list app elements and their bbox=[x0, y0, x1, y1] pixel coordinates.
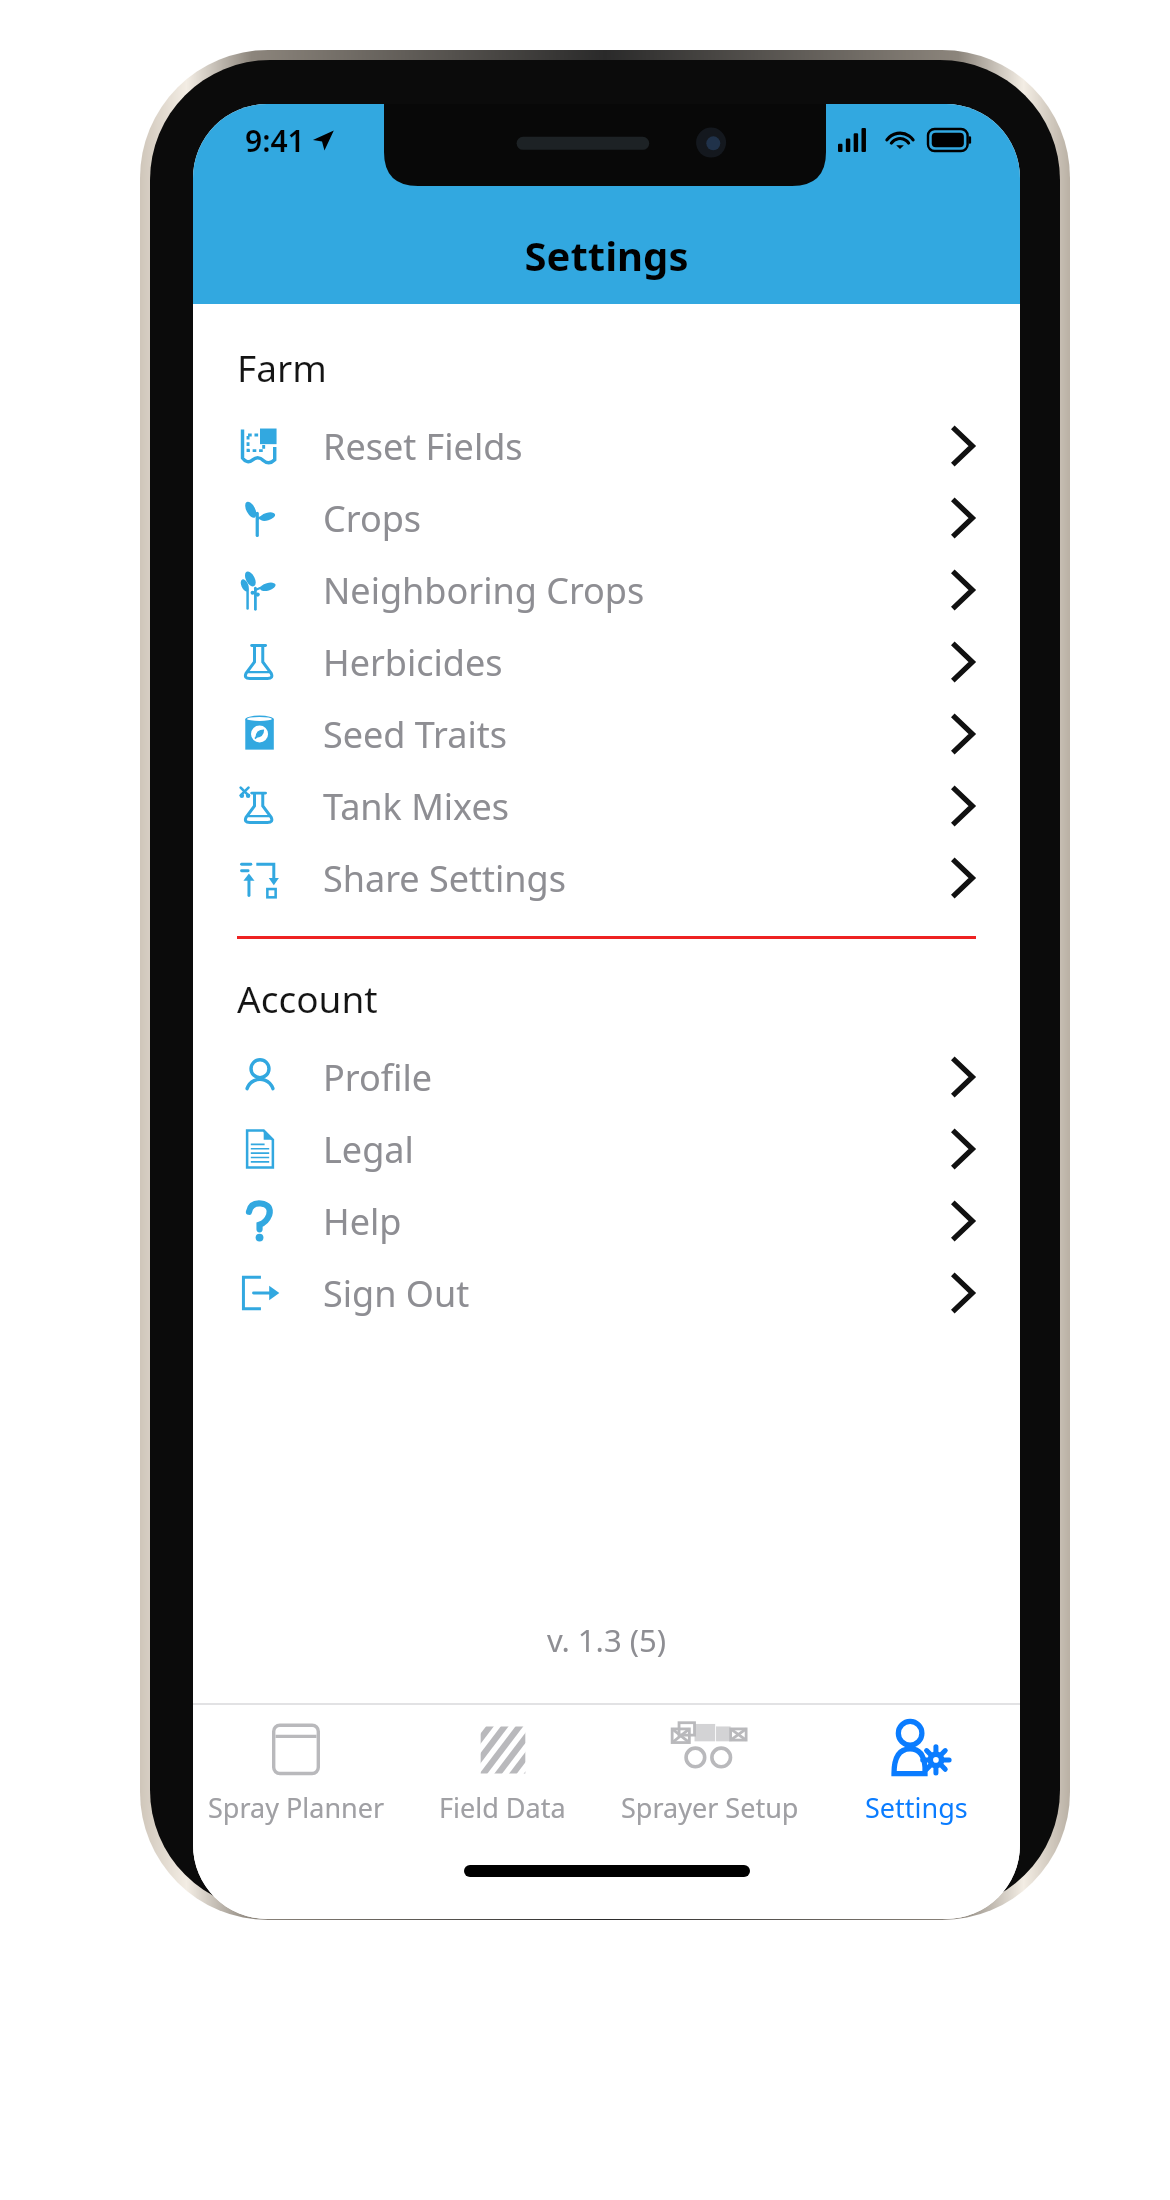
button[interactable]: Seed Traits bbox=[193, 698, 1020, 770]
button[interactable]: Tank Mixes bbox=[193, 770, 1020, 842]
button[interactable]: Sprayer Setup bbox=[606, 1705, 813, 1826]
button[interactable]: Spray Planner bbox=[193, 1705, 399, 1826]
staticText: Reset Fields bbox=[323, 422, 523, 471]
button[interactable]: Profile bbox=[193, 1041, 1020, 1113]
staticText: Field Data bbox=[439, 1789, 566, 1826]
button[interactable]: Sign Out bbox=[193, 1257, 1020, 1329]
staticText: Sign Out bbox=[323, 1269, 470, 1318]
button[interactable]: Herbicides bbox=[193, 626, 1020, 698]
staticText: Legal bbox=[323, 1125, 414, 1174]
button[interactable]: Settings bbox=[813, 1705, 1020, 1826]
button[interactable]: Help bbox=[193, 1185, 1020, 1257]
staticText: Share Settings bbox=[323, 854, 567, 903]
button[interactable]: Reset Fields bbox=[193, 410, 1020, 482]
button[interactable]: Legal bbox=[193, 1113, 1020, 1185]
staticText: Account bbox=[237, 973, 378, 1023]
staticText: Settings bbox=[865, 1789, 968, 1826]
button[interactable]: Field Data bbox=[399, 1705, 606, 1826]
staticText: Settings bbox=[193, 228, 1020, 282]
staticText: Seed Traits bbox=[323, 710, 507, 759]
staticText: Crops bbox=[323, 494, 422, 543]
staticText: Herbicides bbox=[323, 638, 503, 687]
staticText: v. 1.3 (5) bbox=[193, 1619, 1020, 1661]
staticText: Sprayer Setup bbox=[621, 1789, 799, 1826]
staticText: Spray Planner bbox=[208, 1789, 385, 1826]
staticText: Tank Mixes bbox=[323, 782, 509, 831]
staticText: Help bbox=[323, 1197, 402, 1246]
button[interactable]: Share Settings bbox=[193, 842, 1020, 914]
staticText: Neighboring Crops bbox=[323, 566, 645, 615]
button[interactable]: Crops bbox=[193, 482, 1020, 554]
button[interactable]: Neighboring Crops bbox=[193, 554, 1020, 626]
staticText: 9:41 bbox=[245, 120, 305, 161]
staticText: Profile bbox=[323, 1053, 432, 1102]
staticText: Farm bbox=[237, 342, 327, 392]
